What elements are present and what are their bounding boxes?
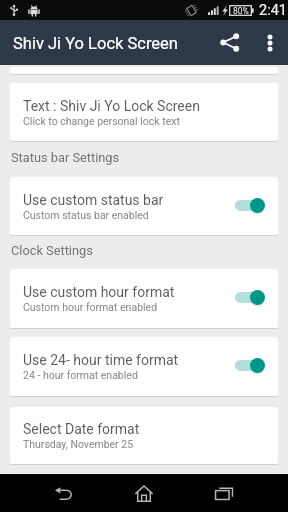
button[interactable]: Home	[104, 474, 184, 512]
button[interactable]: Use custom hour format	[10, 269, 278, 328]
staticText: 24 - hour format enabled	[23, 369, 138, 381]
staticText: Use 24- hour time format	[23, 352, 179, 368]
button[interactable]: Use 24- hour time format	[10, 337, 278, 396]
button[interactable]: Use custom status bar	[10, 177, 278, 235]
staticText: Thursday, November 25	[23, 438, 134, 450]
staticText: Text : Shiv Ji Yo Lock Screen	[23, 98, 200, 114]
button[interactable]: Select Date format	[10, 407, 278, 464]
staticText: 2:41	[259, 2, 287, 19]
staticText: Click to change personal lock text	[23, 115, 180, 127]
button[interactable]: More options	[251, 20, 288, 65]
staticText: Status bar Settings	[11, 150, 120, 165]
staticText: Custom status bar enabled	[23, 209, 149, 221]
button[interactable]: Text : Shiv Ji Yo Lock Screen	[10, 83, 278, 141]
staticText: Select Date format	[23, 421, 140, 437]
staticText: 80%	[233, 6, 249, 16]
staticText: Use custom hour format	[23, 284, 175, 300]
button[interactable]: Share	[207, 20, 251, 65]
button[interactable]: Recent apps	[184, 474, 264, 512]
button[interactable]: Back	[24, 474, 104, 512]
staticText: Custom hour format enabled	[23, 301, 158, 313]
staticText: Shiv Ji Yo Lock Screen	[13, 34, 207, 53]
staticText: Clock Settings	[11, 243, 93, 258]
staticText: Use custom status bar	[23, 192, 164, 208]
